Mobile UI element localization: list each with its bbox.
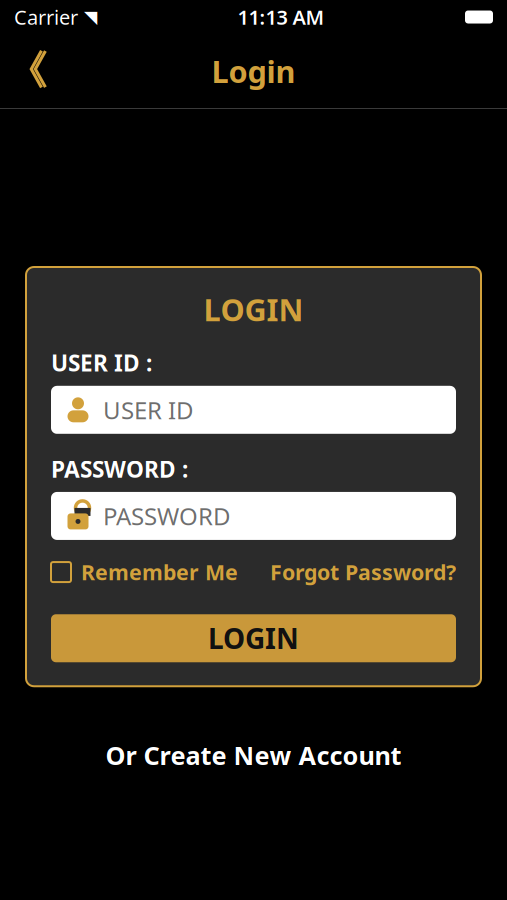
staticText: PASSWORD : <box>51 454 188 484</box>
staticText: PASSWORD <box>103 500 231 532</box>
button[interactable]: Forgot Password? <box>270 558 456 586</box>
staticText: LOGIN <box>203 289 303 330</box>
staticText: Or Create New Account <box>105 738 401 772</box>
button[interactable]: Or Create New Account <box>85 728 421 782</box>
staticText: USER ID <box>103 394 194 426</box>
staticText: Forgot Password? <box>270 558 456 586</box>
staticText: LOGIN <box>208 620 299 657</box>
staticText: Carrier <box>14 4 78 30</box>
staticText: Remember Me <box>81 558 238 586</box>
staticText: 11:13 AM <box>237 4 324 30</box>
button[interactable]: Remember Me <box>51 558 238 586</box>
staticText: 《 <box>7 46 47 95</box>
staticText: USER ID : <box>51 348 152 378</box>
button[interactable]: Back <box>0 48 54 94</box>
staticText: ◥ <box>84 7 97 27</box>
staticText: Login <box>211 51 295 91</box>
button[interactable]: LOGIN <box>51 614 456 662</box>
